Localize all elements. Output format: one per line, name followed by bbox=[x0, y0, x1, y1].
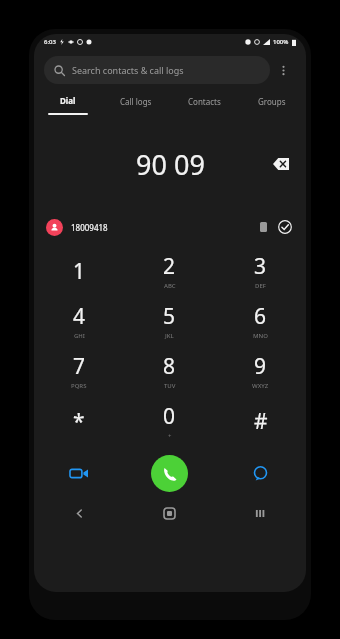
staticText: Call logs bbox=[120, 96, 152, 107]
button[interactable]: 0 bbox=[124, 396, 215, 446]
staticText: 5 bbox=[163, 302, 176, 331]
button[interactable]: 3 bbox=[215, 246, 306, 296]
staticText: WXYZ bbox=[252, 382, 269, 390]
staticText: 6 bbox=[254, 302, 267, 331]
button[interactable]: Contacts bbox=[170, 90, 238, 120]
staticText: 100% bbox=[273, 38, 289, 46]
staticText: + bbox=[168, 432, 172, 440]
button[interactable]: 9 bbox=[215, 346, 306, 396]
staticText: Groups bbox=[258, 96, 286, 107]
staticText: Dial bbox=[60, 95, 76, 106]
staticText: TUV bbox=[164, 382, 176, 390]
staticText: 7 bbox=[73, 352, 86, 381]
staticText: PQRS bbox=[71, 382, 87, 390]
staticText: ABC bbox=[164, 282, 176, 290]
staticText: 1 bbox=[73, 257, 86, 286]
staticText: 90 09 bbox=[136, 146, 205, 183]
button[interactable]: Call logs bbox=[102, 90, 170, 120]
button[interactable]: Video call bbox=[34, 446, 124, 500]
button[interactable]: 1 bbox=[34, 246, 124, 296]
button[interactable]: Select bbox=[276, 218, 294, 236]
staticText: Search contacts & call logs bbox=[72, 64, 184, 76]
staticText: 8 bbox=[163, 352, 176, 381]
button[interactable]: 6 bbox=[215, 296, 306, 346]
button[interactable]: * bbox=[34, 396, 124, 446]
staticText: DEF bbox=[255, 282, 266, 290]
button[interactable]: Groups bbox=[238, 90, 306, 120]
button[interactable]: # bbox=[215, 396, 306, 446]
staticText: GHI bbox=[74, 332, 85, 340]
staticText: * bbox=[73, 407, 85, 436]
button[interactable]: Recents bbox=[215, 500, 306, 526]
button[interactable]: 2 bbox=[124, 246, 215, 296]
button[interactable]: 4 bbox=[34, 296, 124, 346]
staticText: # bbox=[254, 407, 268, 436]
staticText: 2 bbox=[163, 252, 176, 281]
staticText: 3 bbox=[254, 252, 267, 281]
staticText: 9 bbox=[254, 352, 267, 381]
staticText: 18009418 bbox=[71, 222, 108, 233]
button[interactable]: 7 bbox=[34, 346, 124, 396]
button[interactable]: Backspace bbox=[266, 149, 296, 179]
staticText: 4 bbox=[73, 302, 86, 331]
button[interactable]: Call bbox=[151, 455, 188, 492]
button[interactable]: Dial bbox=[34, 90, 102, 120]
button[interactable]: Back bbox=[34, 500, 124, 526]
staticText: Contacts bbox=[188, 96, 221, 107]
staticText: MNO bbox=[253, 332, 268, 340]
button[interactable]: Search contacts & call logs bbox=[44, 56, 270, 84]
staticText: 0 bbox=[163, 402, 176, 431]
button[interactable]: 18009418 bbox=[34, 214, 306, 240]
button[interactable]: Message bbox=[215, 446, 306, 500]
button[interactable]: 8 bbox=[124, 346, 215, 396]
button[interactable]: More options bbox=[270, 57, 296, 83]
staticText: JKL bbox=[165, 332, 174, 340]
button[interactable]: 5 bbox=[124, 296, 215, 346]
staticText: 6:03 bbox=[44, 38, 56, 46]
button[interactable]: Home bbox=[124, 500, 215, 526]
